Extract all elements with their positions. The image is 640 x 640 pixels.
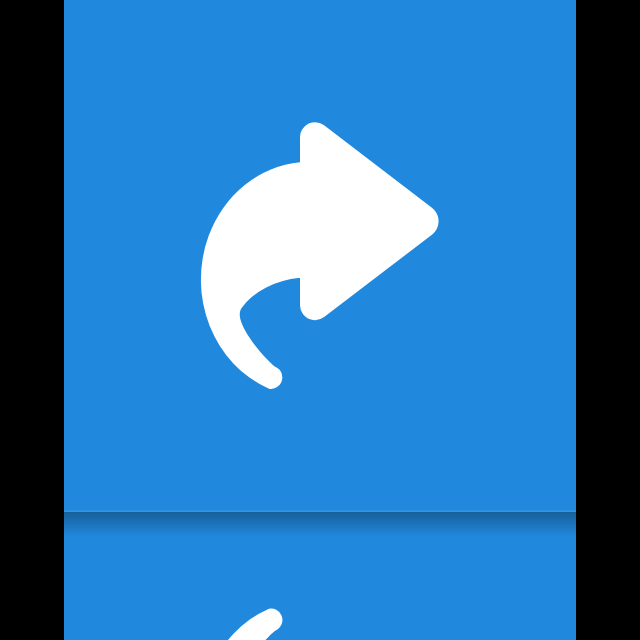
button[interactable]: Share	[0, 0, 640, 640]
